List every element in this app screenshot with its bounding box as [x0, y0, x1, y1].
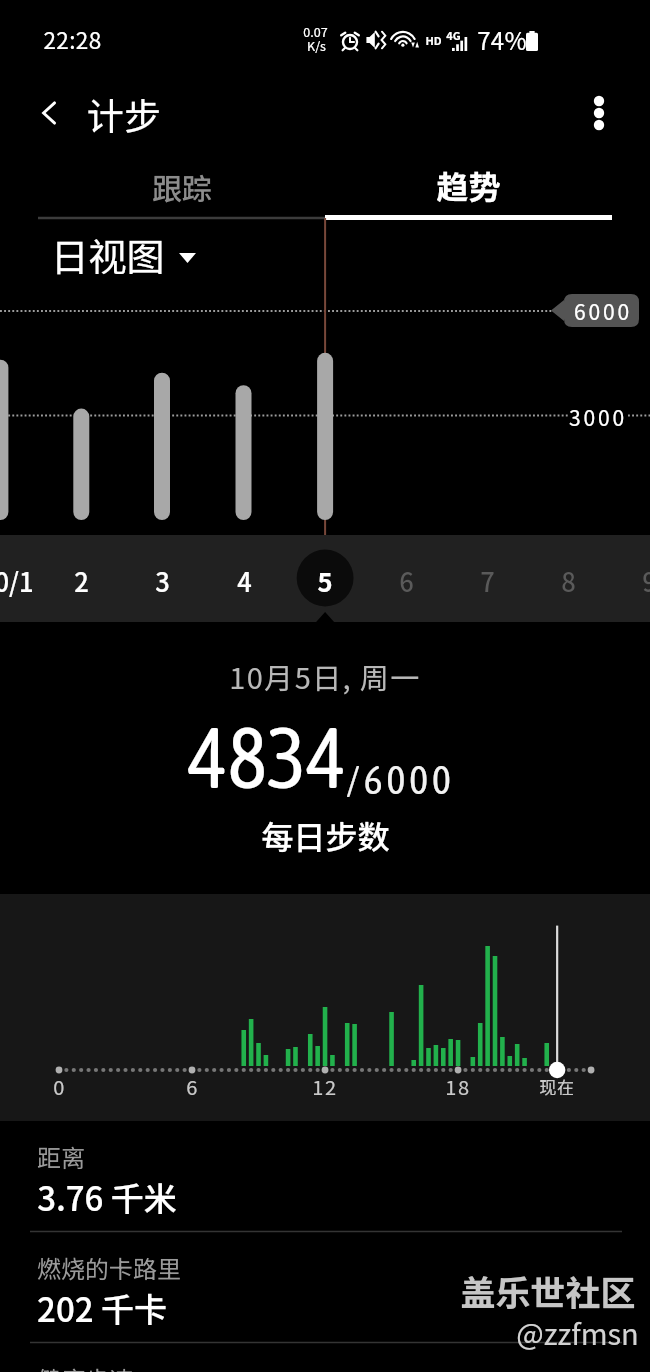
staticText: 8 — [561, 562, 576, 599]
staticText: 每日步数 — [261, 812, 390, 858]
staticText: @zzfmsn — [516, 1311, 639, 1353]
staticText: 202 千卡 — [37, 1284, 167, 1332]
button[interactable]: 3 — [122, 535, 202, 622]
staticText: 距离 — [37, 1139, 85, 1174]
button[interactable]: 4 — [204, 535, 284, 622]
staticText: 12 — [312, 1072, 338, 1101]
staticText: 22:28 — [43, 23, 102, 56]
staticText: 4834 — [188, 710, 346, 806]
staticText: 7 — [480, 562, 495, 599]
staticText: 74% — [477, 22, 527, 57]
staticText: 6000 — [574, 296, 632, 326]
staticText: 3 — [155, 562, 170, 599]
staticText: 6 — [186, 1072, 199, 1101]
staticText: 3.76 千米 — [37, 1173, 177, 1221]
button[interactable]: 健康步速 — [0, 1343, 650, 1372]
staticText: 趋势 — [436, 162, 501, 208]
button[interactable]: 8 — [528, 535, 608, 622]
button[interactable]: 距离 — [0, 1121, 650, 1231]
button[interactable]: 0/1 — [0, 535, 54, 622]
staticText: 日视图 — [50, 227, 165, 282]
button[interactable]: More options — [576, 90, 622, 136]
staticText: 燃烧的卡路里 — [37, 1250, 181, 1285]
staticText: 健康步速 — [37, 1361, 133, 1372]
staticText: /6000 — [346, 757, 455, 803]
button[interactable]: 5 — [285, 535, 365, 622]
staticText: 盖乐世社区 — [460, 1265, 636, 1316]
staticText: 现在 — [539, 1074, 575, 1099]
staticText: 6 — [399, 562, 414, 599]
staticText: HD — [425, 32, 442, 48]
staticText: 9 — [642, 562, 650, 599]
staticText: 10月5日, 周一 — [229, 655, 421, 697]
staticText: K/s — [307, 36, 326, 54]
staticText: 0 — [53, 1072, 66, 1101]
button[interactable]: 2 — [41, 535, 121, 622]
staticText: 18 — [445, 1072, 471, 1101]
staticText: 0.07 — [303, 22, 328, 40]
staticText: 4G — [446, 27, 461, 43]
staticText: 计步 — [87, 87, 161, 141]
button[interactable]: 9 — [609, 535, 650, 622]
staticText: 3000 — [569, 402, 627, 432]
staticText: 4 — [237, 562, 252, 599]
staticText: 5 — [317, 562, 333, 599]
button[interactable]: 跟踪 — [38, 158, 325, 220]
button[interactable]: Back — [27, 90, 73, 136]
button[interactable]: 6 — [366, 535, 446, 622]
staticText: 2 — [74, 562, 89, 599]
staticText: 跟踪 — [152, 165, 212, 208]
button[interactable]: 7 — [447, 535, 527, 622]
button[interactable]: 日视图 — [50, 227, 196, 282]
staticText: 0/1 — [0, 562, 34, 599]
button[interactable]: 燃烧的卡路里 — [0, 1232, 650, 1342]
button[interactable]: 趋势 — [325, 158, 612, 220]
